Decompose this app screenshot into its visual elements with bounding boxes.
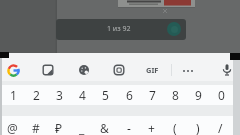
button[interactable]: & (93, 116, 116, 135)
button[interactable] (6, 63, 21, 78)
button[interactable]: ( (163, 116, 186, 135)
button[interactable]: @ (1, 116, 24, 135)
button[interactable]: 9 (187, 85, 210, 105)
staticText: 3 (56, 87, 63, 103)
button[interactable]: GIF (143, 63, 162, 77)
staticText: ( (173, 120, 177, 135)
staticText: # (32, 120, 40, 135)
staticText: 5 (102, 87, 109, 103)
staticText: 1 (10, 87, 17, 103)
staticText: GIF (146, 65, 159, 75)
staticText: ) (196, 120, 200, 135)
button[interactable]: / (209, 116, 232, 135)
button[interactable] (113, 64, 125, 76)
staticText: + (148, 120, 155, 135)
staticText: 2 (33, 87, 40, 103)
button[interactable] (167, 22, 181, 36)
button[interactable]: - (117, 116, 140, 135)
button[interactable]: 6 (118, 85, 141, 105)
button[interactable]: ) (186, 116, 209, 135)
button[interactable]: 5 (94, 85, 117, 105)
staticText: 9 (195, 87, 202, 103)
staticText: 1 из 92 (107, 24, 131, 34)
button[interactable]: 2 (25, 85, 48, 105)
button[interactable] (181, 64, 195, 76)
button[interactable]: ₽ (47, 116, 70, 135)
button[interactable]: _ (70, 116, 93, 135)
button[interactable]: 4 (71, 85, 94, 105)
button[interactable]: 7 (141, 85, 164, 105)
button[interactable]: 1 (2, 85, 25, 105)
button[interactable]: + (140, 116, 163, 135)
staticText: 8 (172, 87, 179, 103)
button[interactable]: # (24, 116, 47, 135)
button[interactable] (118, 0, 195, 7)
button[interactable] (42, 64, 54, 76)
staticText: / (218, 120, 223, 135)
staticText: 6 (126, 87, 133, 103)
button[interactable]: 8 (164, 85, 187, 105)
staticText: & (100, 120, 109, 135)
button[interactable]: 3 (48, 85, 71, 105)
staticText: 4 (79, 87, 86, 103)
staticText: _ (79, 120, 85, 135)
staticText: @ (7, 120, 18, 135)
staticText: 0 (218, 87, 225, 103)
staticText: 7 (149, 87, 156, 103)
button[interactable]: 0 (210, 85, 233, 105)
button[interactable] (78, 64, 90, 76)
staticText: ₽ (55, 120, 62, 135)
button[interactable] (221, 63, 233, 77)
staticText: - (127, 120, 131, 135)
